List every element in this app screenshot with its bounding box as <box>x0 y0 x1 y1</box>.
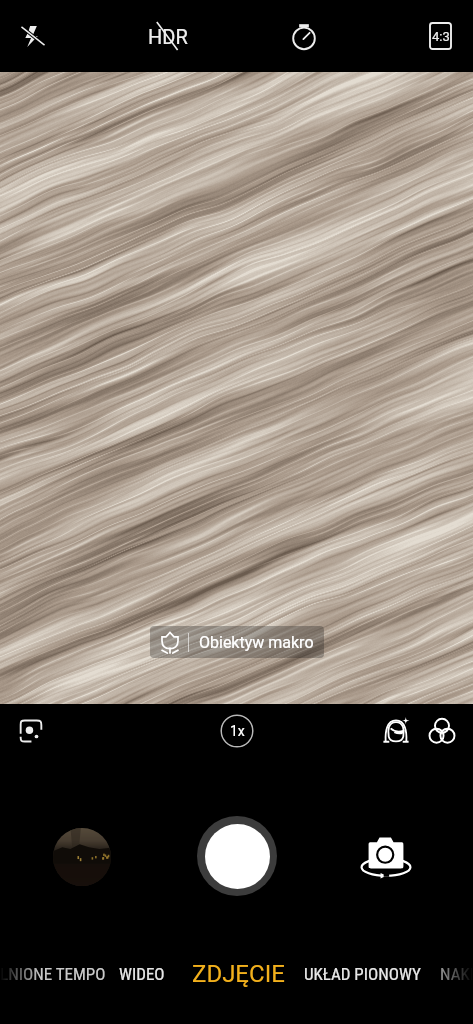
staticText: WIDEO <box>119 964 165 984</box>
staticText: UKŁAD PIONOWY <box>304 964 421 984</box>
staticText: 4:3 <box>432 29 450 44</box>
button[interactable]: ZDJĘCIE <box>192 952 285 996</box>
button[interactable]: WIDEO <box>119 952 165 996</box>
button[interactable]: Obiektyw makro <box>150 626 324 658</box>
button[interactable]: 1x <box>220 714 254 748</box>
button[interactable]: Aspect ratio 4 to 3 <box>414 10 466 62</box>
button[interactable]: NAKLEJKI <box>440 952 473 996</box>
staticText: NAKLEJKI <box>440 964 473 984</box>
staticText: ZDJĘCIE <box>192 960 285 988</box>
staticText: HDR <box>148 25 188 48</box>
staticText: 1x <box>230 723 245 739</box>
button[interactable]: Switch camera <box>357 827 415 885</box>
button[interactable]: Timer <box>278 10 330 62</box>
button[interactable]: Filters <box>420 709 464 753</box>
button[interactable]: Gallery <box>53 828 111 886</box>
button[interactable]: Scene detection <box>9 709 53 753</box>
staticText: ZWOLNIONE TEMPO <box>0 964 106 984</box>
button[interactable]: Flash off <box>7 10 59 62</box>
button[interactable]: HDR off <box>142 10 194 62</box>
button[interactable]: Beauty <box>374 709 418 753</box>
button[interactable]: Take photo <box>197 816 277 896</box>
button[interactable]: ZWOLNIONE TEMPO <box>0 952 106 996</box>
staticText: Obiektyw makro <box>199 633 314 652</box>
button[interactable]: UKŁAD PIONOWY <box>304 952 421 996</box>
